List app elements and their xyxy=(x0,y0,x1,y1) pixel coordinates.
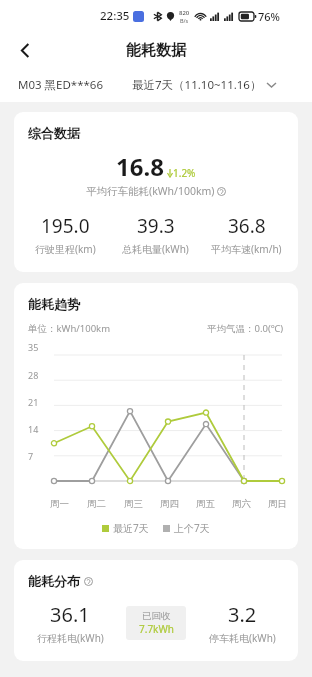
button[interactable]: Back xyxy=(10,35,40,65)
staticText: 周六 xyxy=(232,498,251,510)
button[interactable]: 3.2 xyxy=(186,601,298,645)
staticText: 上个7天 xyxy=(174,521,210,535)
staticText: 能耗趋势 xyxy=(28,296,80,312)
staticText: 周五 xyxy=(196,498,215,510)
staticText: 平均气温：0.0(℃) xyxy=(207,322,284,335)
staticText: 76% xyxy=(258,9,280,24)
staticText: 周四 xyxy=(160,498,179,510)
staticText: 单位：kWh/100km xyxy=(28,322,111,335)
staticText: 22:35 xyxy=(100,8,130,24)
staticText: 周二 xyxy=(87,498,106,510)
staticText: 能耗数据 xyxy=(126,41,186,60)
staticText: 综合数据 xyxy=(28,125,80,141)
staticText: 最近7天（11.10~11.16） xyxy=(132,77,262,93)
staticText: 39.3 xyxy=(137,213,175,239)
staticText: 820 xyxy=(179,9,190,17)
staticText: 3.2 xyxy=(228,601,257,628)
staticText: 28 xyxy=(28,369,39,381)
staticText: 能耗分布 xyxy=(28,573,80,589)
staticText: 1.2% xyxy=(173,166,196,180)
staticText: 行驶里程(km) xyxy=(35,242,96,256)
staticText: 最近7天 xyxy=(113,521,149,535)
button[interactable]: M03 黑ED***66 xyxy=(18,77,104,93)
staticText: 35 xyxy=(28,341,39,353)
staticText: 195.0 xyxy=(41,213,90,239)
staticText: B/s xyxy=(180,17,189,24)
staticText: 周一 xyxy=(50,498,69,510)
staticText: 7 xyxy=(28,450,34,462)
staticText: 已回收 xyxy=(142,610,171,622)
button[interactable]: 36.1 xyxy=(14,601,126,645)
staticText: 36.8 xyxy=(228,213,266,239)
staticText: 停车耗电(kWh) xyxy=(209,631,276,645)
staticText: M03 黑ED***66 xyxy=(18,77,104,93)
button[interactable]: 195.0 xyxy=(20,213,110,256)
staticText: 21 xyxy=(28,396,39,408)
staticText: 14 xyxy=(28,423,39,435)
staticText: 平均车速(km/h) xyxy=(211,242,282,256)
staticText: 16.8 xyxy=(116,150,164,183)
staticText: 7.7kWh xyxy=(139,622,174,636)
staticText: 平均行车能耗(kWh/100km) xyxy=(86,184,215,198)
staticText: 36.1 xyxy=(50,601,90,628)
staticText: 行程耗电(kWh) xyxy=(37,631,104,645)
button[interactable]: 36.8 xyxy=(201,213,292,256)
staticText: 总耗电量(kWh) xyxy=(122,242,189,256)
button[interactable]: 最近7天（11.10~11.16） xyxy=(132,77,276,93)
staticText: 周日 xyxy=(268,498,287,510)
staticText: 周三 xyxy=(124,498,143,510)
button[interactable]: 39.3 xyxy=(110,213,201,256)
